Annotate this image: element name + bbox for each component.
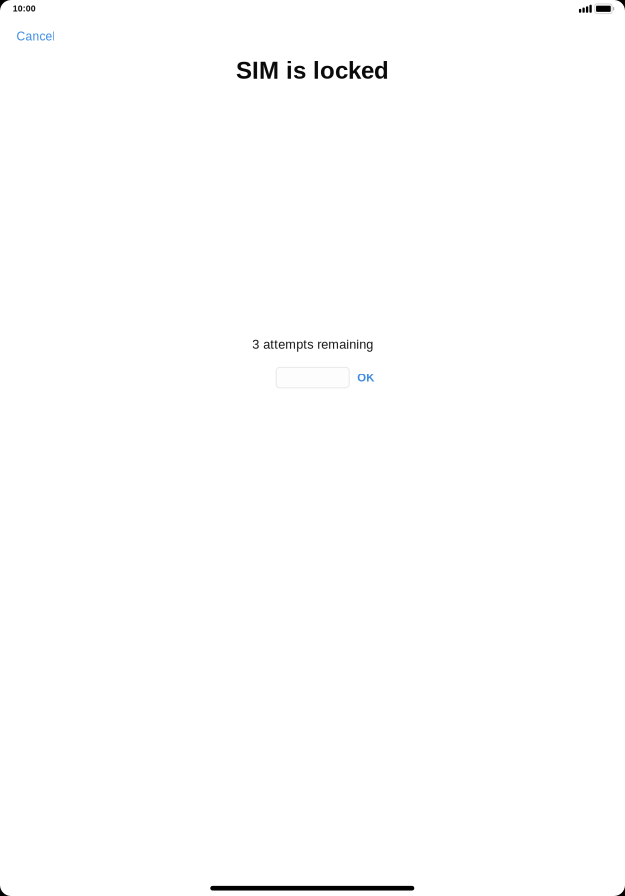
staticText: SIM is locked xyxy=(236,57,389,84)
button[interactable]: SIM PIN xyxy=(276,367,349,388)
button[interactable]: Cancel xyxy=(8,24,64,48)
staticText: 10:00 xyxy=(13,4,36,13)
button[interactable]: OK xyxy=(357,367,374,388)
staticText: OK xyxy=(357,371,374,384)
staticText: Cancel xyxy=(16,30,55,43)
staticText: 3 attempts remaining xyxy=(252,337,373,351)
